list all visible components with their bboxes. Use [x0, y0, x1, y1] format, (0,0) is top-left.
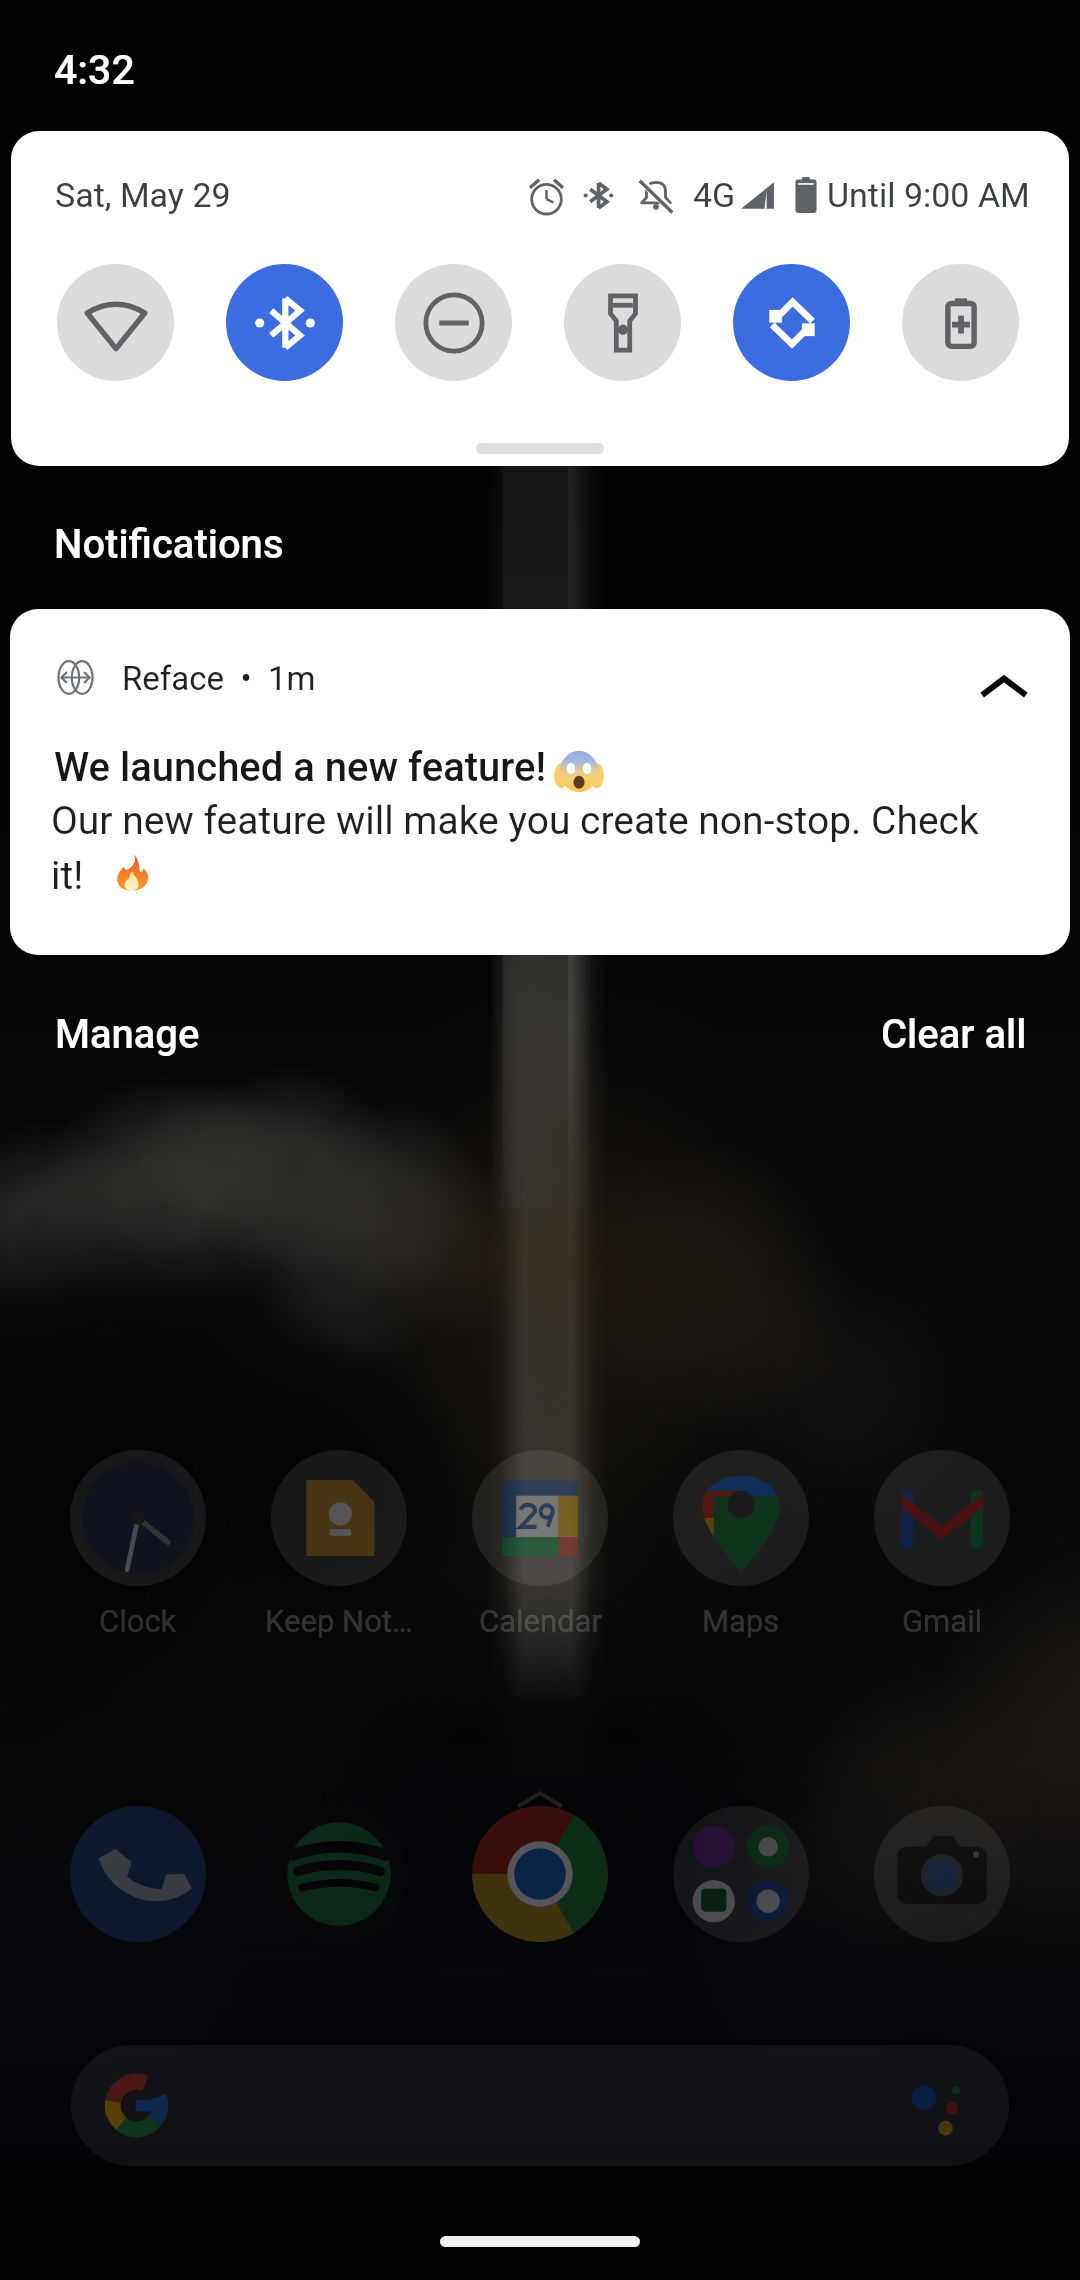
button[interactable]: Manage	[31, 989, 224, 1080]
button[interactable]: Maps	[641, 1450, 841, 1640]
staticText: Reface • 1m	[122, 659, 316, 698]
staticText: Clear all	[881, 1011, 1027, 1058]
staticText: Gmail	[902, 1603, 983, 1639]
button[interactable]: Search	[71, 2045, 1009, 2166]
staticText: Clock	[99, 1603, 177, 1639]
button[interactable]: Flashlight	[538, 262, 707, 382]
button[interactable]: Messaging folder	[673, 1806, 809, 1942]
staticText: Manage	[55, 1011, 200, 1058]
button[interactable]: Do not disturb	[369, 262, 538, 382]
staticText: Maps	[702, 1603, 780, 1639]
staticText: it!	[51, 853, 84, 899]
button[interactable]: Auto-rotate	[707, 262, 876, 382]
button[interactable]: Wi-Fi	[31, 262, 200, 382]
button[interactable]: Calendar	[440, 1450, 640, 1640]
button[interactable]: Keep Not…	[239, 1450, 439, 1640]
button[interactable]: Battery Saver	[876, 262, 1045, 382]
staticText: Until 9:00 AM	[827, 175, 1030, 215]
button[interactable]: Chrome	[472, 1806, 608, 1942]
staticText: We launched a new feature!	[54, 744, 547, 791]
button[interactable]: Clock	[38, 1450, 238, 1640]
button[interactable]: Expand quick settings	[430, 426, 650, 466]
staticText: Notifications	[54, 521, 284, 568]
button[interactable]: Gmail	[842, 1450, 1042, 1640]
staticText: 4G	[693, 175, 736, 215]
staticText: Our new feature will make you create non…	[51, 798, 979, 844]
button[interactable]: Camera	[874, 1806, 1010, 1942]
staticText: Calendar	[479, 1603, 602, 1639]
button[interactable]: Bluetooth	[200, 262, 369, 382]
button[interactable]: Collapse notification	[964, 649, 1044, 729]
button[interactable]: Phone	[70, 1806, 206, 1942]
button[interactable]: Spotify	[271, 1806, 407, 1942]
button[interactable]: Reface • 1m	[10, 609, 1070, 955]
staticText: Sat, May 29	[55, 175, 231, 215]
button[interactable]: Clear all	[857, 989, 1051, 1080]
staticText: Keep Not…	[265, 1603, 413, 1639]
staticText: 4:32	[54, 46, 135, 94]
